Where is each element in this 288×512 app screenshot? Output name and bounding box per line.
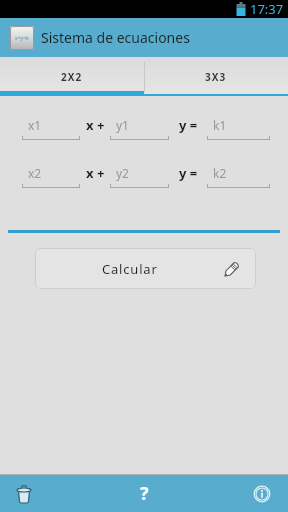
- staticText: x +: [86, 116, 105, 134]
- staticText: y =: [179, 164, 198, 182]
- staticText: y2: [116, 165, 129, 181]
- staticText: x1: [28, 117, 42, 133]
- staticText: 2X2: [61, 70, 83, 84]
- staticText: x2: [28, 165, 42, 181]
- staticText: 3X3: [205, 70, 227, 84]
- staticText: k2: [213, 165, 227, 181]
- button[interactable]: 2X2: [0, 57, 144, 96]
- staticText: 17:37: [250, 0, 284, 18]
- staticText: y =: [179, 116, 198, 134]
- staticText: k1: [213, 117, 227, 133]
- button[interactable]: Calcular: [35, 248, 256, 289]
- staticText: ?: [140, 481, 149, 506]
- button[interactable]: [13, 483, 35, 505]
- staticText: Sistema de ecuaciones: [41, 28, 190, 47]
- staticText: x +: [86, 164, 105, 182]
- button[interactable]: 3X3: [144, 57, 288, 96]
- button[interactable]: ?: [124, 475, 164, 512]
- staticText: x+y=k: [15, 35, 29, 42]
- staticText: Calcular: [102, 260, 158, 278]
- staticText: y1: [116, 117, 129, 133]
- button[interactable]: [252, 484, 272, 504]
